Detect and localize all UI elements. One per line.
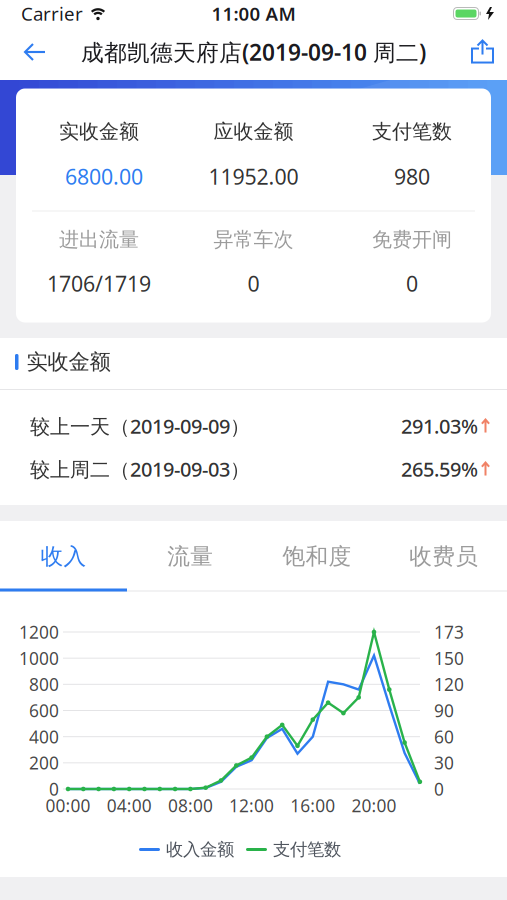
staticText: Carrier [21,1,83,26]
staticText: 6800.00 [65,162,143,191]
staticText: 实收金额 [26,349,110,375]
staticText: 90 [434,699,454,722]
staticText: 0 [247,269,259,298]
staticText: 实收金额 [59,119,139,144]
staticText: 0 [49,777,59,800]
staticText: 400 [29,725,59,748]
staticText: 120 [434,673,464,696]
staticText: 成都凯德天府店(2019-09-10 周二) [81,37,426,67]
staticText: 16:00 [290,794,335,817]
staticText: 较上周二（2019-09-03） [30,456,250,482]
staticText: 支付笔数 [372,119,452,144]
button[interactable]: Share [472,28,507,75]
staticText: 04:00 [107,794,152,817]
button[interactable]: 流量 [127,521,254,591]
staticText: 0 [406,269,418,298]
staticText: 08:00 [168,794,213,817]
button[interactable]: 饱和度 [253,521,380,591]
staticText: 150 [434,647,464,670]
staticText: 265.59% [401,456,478,482]
staticText: 291.03% [401,413,478,439]
staticText: 60 [434,725,454,748]
staticText: 980 [394,162,430,191]
button[interactable]: 收入 [0,521,127,591]
staticText: 饱和度 [282,543,351,570]
staticText: 00:00 [45,794,90,817]
staticText: 1200 [19,620,59,643]
staticText: 进出流量 [59,227,139,252]
staticText: 应收金额 [213,119,293,144]
staticText: 较上一天（2019-09-09） [30,413,250,439]
staticText: 12:00 [229,794,274,817]
button[interactable]: Back [0,29,45,75]
staticText: 收入 [40,543,86,570]
staticText: 11:00 AM [211,1,295,26]
staticText: 11952.00 [208,162,298,191]
staticText: 1706/1719 [47,269,151,298]
staticText: 支付笔数 [273,839,341,860]
staticText: 800 [29,673,59,696]
staticText: 收费员 [409,543,478,570]
staticText: 0 [434,777,444,800]
staticText: 200 [29,751,59,774]
staticText: 异常车次 [213,227,293,252]
staticText: 1000 [19,647,59,670]
staticText: 20:00 [351,794,396,817]
staticText: 600 [29,699,59,722]
staticText: 免费开闸 [372,227,452,252]
staticText: 30 [434,751,454,774]
staticText: 收入金额 [166,839,234,860]
staticText: 流量 [167,543,213,570]
staticText: 173 [434,620,464,643]
button[interactable]: 收费员 [380,521,507,591]
